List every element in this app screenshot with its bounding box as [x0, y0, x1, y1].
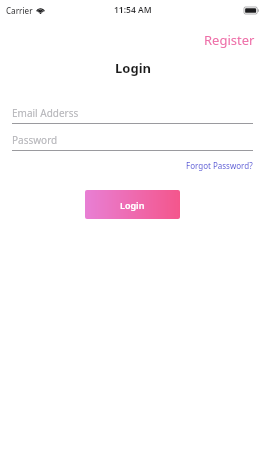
staticText: Login	[115, 59, 151, 77]
staticText: Email Adderss	[12, 106, 79, 120]
button[interactable]: Login	[85, 190, 180, 219]
button[interactable]: Email Adderss	[12, 103, 253, 124]
staticText: Forgot Password?	[186, 160, 253, 171]
staticText: Register	[204, 31, 255, 49]
staticText: Password	[12, 133, 58, 147]
staticText: 11:54 AM	[114, 4, 152, 16]
button[interactable]: Forgot Password?	[174, 158, 265, 173]
staticText: Carrier	[6, 5, 33, 16]
staticText: Login	[120, 199, 145, 211]
button[interactable]: Password	[12, 130, 253, 151]
button[interactable]: Register	[194, 29, 265, 51]
